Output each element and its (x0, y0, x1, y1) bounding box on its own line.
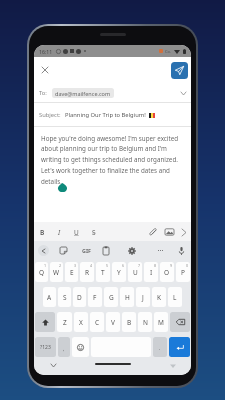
button[interactable]: Clipboard (100, 245, 111, 256)
button[interactable]: J (136, 287, 150, 307)
button[interactable]: Attach file (147, 226, 159, 238)
staticText: 16:11 (39, 48, 53, 55)
button[interactable]: Subject: (34, 103, 191, 127)
button[interactable]: S (58, 287, 71, 307)
button[interactable]: O (160, 262, 174, 282)
staticText: S (92, 228, 96, 237)
staticText: To: (39, 89, 47, 97)
staticText: U (133, 268, 138, 277)
button[interactable]: K (152, 287, 166, 307)
button[interactable]: P (176, 262, 190, 282)
button[interactable]: Back (38, 245, 49, 256)
button[interactable]: Keyboard switcher (167, 360, 178, 371)
staticText: 8 (154, 263, 157, 268)
staticText: N (143, 318, 148, 327)
button[interactable]: Shift (35, 312, 55, 332)
button[interactable]: . (153, 337, 167, 357)
staticText: Y (117, 268, 121, 277)
button[interactable]: D (73, 287, 86, 307)
button[interactable]: Close (37, 62, 53, 78)
button[interactable]: I (144, 262, 158, 282)
button[interactable]: W (50, 262, 63, 282)
button[interactable]: , (58, 337, 70, 357)
button[interactable]: E (65, 262, 78, 282)
staticText: U (74, 228, 79, 237)
button[interactable]: R (80, 262, 94, 282)
button[interactable]: Enter (169, 337, 190, 357)
staticText: , (63, 346, 65, 353)
button[interactable]: M (154, 312, 168, 332)
button[interactable]: More options (155, 245, 166, 256)
staticText: 7 (138, 263, 141, 268)
staticText: C (95, 318, 100, 327)
staticText: Planning Our Trip to Belgium! (65, 111, 146, 119)
button[interactable]: V (106, 312, 120, 332)
button[interactable]: T (96, 262, 110, 282)
button[interactable]: F (88, 287, 102, 307)
staticText: A (47, 293, 52, 302)
staticText: I (58, 228, 61, 237)
staticText: P (181, 268, 185, 277)
button[interactable]: Emoji (72, 337, 89, 357)
staticText: M (158, 318, 164, 327)
staticText: 0 (186, 263, 189, 268)
staticText: D (77, 293, 82, 302)
staticText: W (53, 268, 60, 277)
button[interactable]: Insert image (163, 226, 175, 238)
staticText: 2 (59, 263, 62, 268)
staticText: 5 (106, 263, 109, 268)
staticText: B (127, 318, 132, 327)
button[interactable]: N (138, 312, 152, 332)
staticText: 1 (44, 263, 47, 268)
button[interactable]: S (88, 227, 99, 238)
button[interactable]: Stickers (58, 245, 69, 256)
button[interactable]: Hide keyboard (48, 360, 59, 371)
staticText: G (109, 293, 114, 302)
staticText: B (40, 228, 45, 237)
button[interactable]: More formatting (179, 227, 189, 237)
button[interactable]: L (168, 287, 182, 307)
staticText: O (164, 268, 170, 277)
staticText: V (111, 318, 115, 327)
staticText: Co. (165, 49, 172, 54)
staticText: X (79, 318, 83, 327)
staticText: E (70, 268, 74, 277)
button[interactable]: B (37, 227, 48, 238)
staticText: GIF (82, 247, 91, 254)
button[interactable]: U (128, 262, 142, 282)
staticText: 9 (170, 263, 173, 268)
button[interactable]: B (122, 312, 136, 332)
button[interactable]: A (43, 287, 56, 307)
staticText: ?123 (40, 344, 51, 351)
staticText: Q (39, 268, 45, 277)
staticText: . (159, 345, 161, 352)
button[interactable]: Voice input (176, 245, 187, 256)
button[interactable]: Z (57, 312, 72, 332)
staticText: F (93, 293, 97, 302)
button[interactable]: C (90, 312, 104, 332)
staticText: H (125, 293, 130, 302)
button[interactable]: Settings (126, 245, 137, 256)
button[interactable]: I (54, 227, 65, 238)
button[interactable]: ?123 (35, 337, 56, 357)
staticText: dave@mailfence.com (55, 90, 111, 97)
button[interactable]: X (74, 312, 88, 332)
button[interactable]: U (71, 227, 82, 238)
button[interactable]: H (120, 287, 134, 307)
staticText: 3 (74, 263, 77, 268)
button[interactable]: Q (35, 262, 48, 282)
staticText: Z (63, 318, 67, 327)
button[interactable]: To: (34, 83, 191, 103)
button[interactable]: Send (171, 62, 188, 79)
button[interactable]: Backspace (170, 312, 190, 332)
staticText: S (63, 293, 67, 302)
staticText: J (142, 293, 144, 302)
staticText: Hope you're doing awesome! I'm super exc… (41, 134, 181, 186)
staticText: 6 (122, 263, 125, 268)
button[interactable]: G (104, 287, 118, 307)
staticText: T (101, 268, 105, 277)
button[interactable]: GIF (79, 245, 93, 256)
button[interactable]: Y (112, 262, 126, 282)
staticText: L (173, 293, 177, 302)
